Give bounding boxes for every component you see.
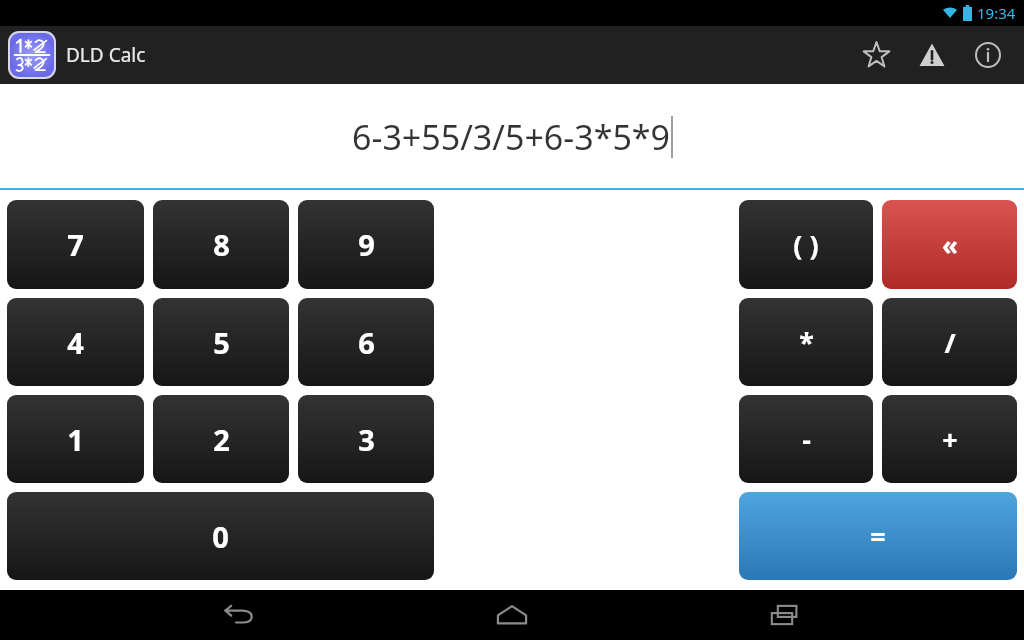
button[interactable]: Home	[478, 590, 546, 640]
staticText: DLD Calc	[66, 42, 146, 68]
staticText: 0	[212, 517, 229, 556]
button[interactable]: 6-3+55/3/5+6-3*5*9	[0, 84, 1024, 190]
button[interactable]: *	[739, 298, 873, 386]
button[interactable]: 5	[153, 298, 289, 386]
button[interactable]: Backspace	[882, 200, 1017, 289]
button[interactable]: 6	[298, 298, 434, 386]
staticText: 4	[67, 323, 84, 362]
staticText: 6	[358, 323, 375, 362]
button[interactable]: 9	[298, 200, 434, 289]
staticText: 2	[213, 420, 230, 459]
staticText: ( )	[793, 226, 819, 263]
button[interactable]: Back	[205, 590, 273, 640]
staticText: 1	[67, 420, 84, 459]
button[interactable]: 4	[7, 298, 144, 386]
button[interactable]: 2	[153, 395, 289, 483]
staticText: 9	[358, 225, 375, 264]
button[interactable]: /	[882, 298, 1017, 386]
staticText: «	[942, 227, 958, 262]
staticText: 6-3+55/3/5+6-3*5*9	[352, 114, 671, 160]
staticText: -	[802, 421, 811, 458]
staticText: 3	[358, 420, 375, 459]
staticText: =	[870, 518, 886, 555]
button[interactable]: Info	[960, 27, 1016, 83]
staticText: 5	[213, 323, 230, 362]
button[interactable]: Warning	[904, 27, 960, 83]
staticText: 7	[67, 225, 84, 264]
button[interactable]: Recent apps	[751, 590, 819, 640]
button[interactable]: ( )	[739, 200, 873, 289]
button[interactable]: 7	[7, 200, 144, 289]
staticText: +	[942, 421, 958, 458]
button[interactable]: =	[739, 492, 1017, 580]
staticText: *	[799, 324, 814, 361]
button[interactable]: 0	[7, 492, 434, 580]
button[interactable]: 1	[7, 395, 144, 483]
button[interactable]: Favorite	[848, 27, 904, 83]
staticText: 19:34	[977, 3, 1016, 23]
button[interactable]: 3	[298, 395, 434, 483]
button[interactable]: 8	[153, 200, 289, 289]
staticText: /	[944, 324, 956, 361]
button[interactable]: -	[739, 395, 873, 483]
button[interactable]: +	[882, 395, 1017, 483]
staticText: 8	[213, 225, 230, 264]
